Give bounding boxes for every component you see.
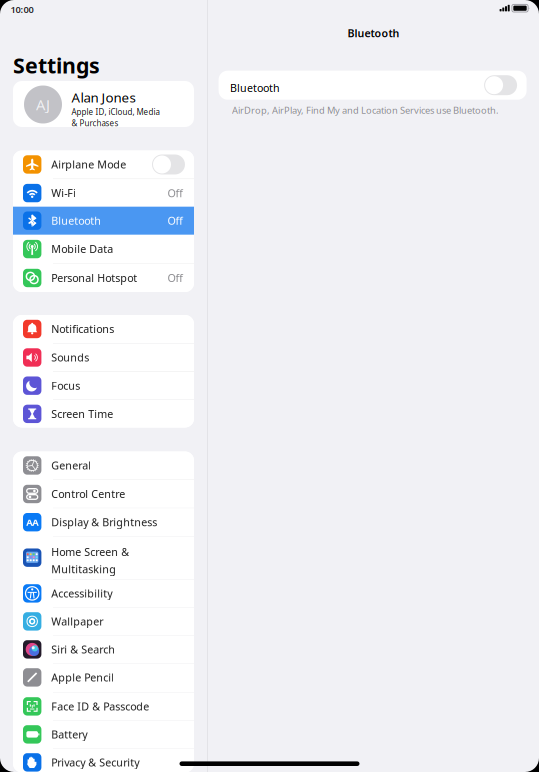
button[interactable]: Siri & Search: [13, 635, 194, 663]
staticText: & Purchases: [71, 118, 118, 128]
staticText: Apple Pencil: [51, 670, 114, 684]
staticText: Privacy & Security: [51, 755, 139, 769]
staticText: Wallpaper: [51, 614, 103, 628]
button[interactable]: Home Screen &: [13, 536, 194, 579]
button[interactable]: Privacy & Security: [13, 748, 194, 772]
staticText: Sounds: [51, 350, 89, 364]
staticText: Settings: [13, 51, 100, 79]
button[interactable]: Bluetooth: [13, 207, 194, 235]
staticText: AJ: [36, 95, 50, 114]
button[interactable]: Airplane Mode: [13, 150, 194, 178]
staticText: Off: [167, 186, 182, 200]
button[interactable]: Sounds: [13, 343, 194, 371]
staticText: Apple ID, iCloud, Media: [71, 107, 159, 117]
staticText: General: [51, 458, 91, 472]
staticText: Wi-Fi: [51, 186, 76, 200]
staticText: Focus: [51, 378, 80, 393]
staticText: Personal Hotspot: [51, 271, 137, 285]
button[interactable]: Mobile Data: [13, 235, 194, 263]
button[interactable]: Apple Pencil: [13, 663, 194, 691]
staticText: Airplane Mode: [51, 157, 126, 171]
staticText: Control Centre: [51, 487, 125, 501]
staticText: Off: [167, 214, 182, 228]
staticText: AA: [26, 516, 38, 528]
staticText: Off: [167, 271, 182, 285]
button[interactable]: General: [13, 451, 194, 479]
staticText: Bluetooth: [51, 213, 101, 228]
staticText: 10:00: [10, 3, 33, 16]
button[interactable]: Notifications: [13, 315, 194, 343]
staticText: Siri & Search: [51, 642, 115, 656]
button[interactable]: AJ: [13, 81, 194, 127]
staticText: Home Screen &: [51, 545, 129, 559]
staticText: Alan Jones: [71, 88, 135, 106]
button[interactable]: Accessibility: [13, 579, 194, 607]
staticText: Display & Brightness: [51, 515, 157, 529]
button[interactable]: Battery: [13, 720, 194, 748]
staticText: Multitasking: [51, 562, 116, 576]
button[interactable]: Wi-Fi: [13, 179, 194, 207]
button[interactable]: Personal Hotspot: [13, 264, 194, 292]
button[interactable]: Control Centre: [13, 480, 194, 508]
staticText: Accessibility: [51, 586, 112, 600]
staticText: Notifications: [51, 322, 114, 336]
button[interactable]: Bluetooth: [219, 71, 527, 100]
staticText: AirDrop, AirPlay, Find My and Location S…: [232, 104, 499, 116]
staticText: Screen Time: [51, 407, 113, 421]
button[interactable]: Face ID & Passcode: [13, 692, 194, 720]
staticText: Face ID & Passcode: [51, 699, 149, 713]
button[interactable]: Focus: [13, 372, 194, 400]
staticText: Bluetooth: [230, 81, 280, 95]
staticText: Mobile Data: [51, 242, 113, 256]
staticText: Bluetooth: [347, 26, 399, 40]
button[interactable]: Wallpaper: [13, 607, 194, 635]
button[interactable]: AA: [13, 508, 194, 536]
staticText: Battery: [51, 727, 87, 741]
button[interactable]: Screen Time: [13, 400, 194, 428]
